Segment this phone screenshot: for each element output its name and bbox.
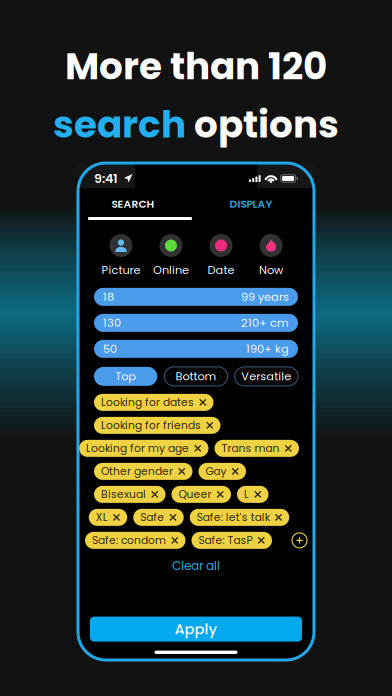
staticText: Safe: let's talk [197,510,270,525]
staticText: Safe: TasP [198,533,252,548]
button[interactable]: 130 [94,314,298,332]
staticText: Apply [174,619,217,639]
staticText: Clear all [172,557,220,574]
button[interactable]: L [237,486,268,503]
button[interactable]: DISPLAY [188,196,314,212]
button[interactable]: Safe: let's talk [190,509,289,526]
staticText: search [53,98,186,151]
button[interactable]: Add filter [292,533,307,548]
button[interactable]: Apply [90,617,302,642]
staticText: options [186,98,339,151]
staticText: Gay [205,464,226,479]
staticText: 210+ cm [241,315,289,331]
staticText: L [244,487,249,502]
staticText: 18 [103,289,114,305]
button[interactable]: Top [94,367,157,386]
staticText: Versatile [241,368,291,384]
staticText: Other gender [101,464,173,479]
staticText: Trans man [221,441,279,456]
staticText: 50 [103,341,117,357]
button[interactable]: Looking for dates [94,394,213,411]
button[interactable]: Versatile [235,367,298,386]
button[interactable]: Looking for my age [79,440,208,457]
button[interactable]: 50 [94,340,298,358]
button[interactable]: Gay [198,463,246,480]
staticText: Date [207,262,234,278]
button[interactable]: Queer [171,486,231,503]
staticText: Picture [101,262,140,278]
staticText: Safe [140,510,164,525]
staticText: More than 120 [65,40,327,92]
button[interactable]: Bottom [164,367,228,386]
staticText: XL [96,510,108,525]
staticText: 99 years [241,289,289,305]
button[interactable]: Looking for friends [94,417,220,434]
staticText: SEARCH [111,196,154,211]
button[interactable]: Trans man [214,440,299,457]
staticText: 190+ kg [246,341,289,357]
button[interactable]: Clear all [161,559,231,573]
staticText: 130 [103,315,121,331]
button[interactable]: Safe: TasP [191,532,272,549]
button[interactable]: Safe: condom [85,532,185,549]
button[interactable]: Now [246,234,296,278]
button[interactable]: SEARCH [78,196,188,212]
staticText: Bottom [175,368,216,384]
staticText: 9:41 [94,170,118,187]
staticText: Looking for dates [101,395,194,410]
button[interactable]: Picture [96,234,146,278]
staticText: DISPLAY [229,196,272,211]
button[interactable]: Date [196,234,246,278]
button[interactable]: XL [89,509,127,526]
staticText: Queer [178,487,211,502]
staticText: Looking for my age [86,441,189,456]
staticText: Top [115,368,136,384]
button[interactable]: Other gender [94,463,192,480]
button[interactable]: Online [146,234,196,278]
staticText: Looking for friends [101,418,201,433]
staticText: Bisexual [101,487,146,502]
button[interactable]: 18 [94,288,298,306]
staticText: Now [259,262,283,278]
button[interactable]: Bisexual [94,486,165,503]
button[interactable]: Safe [133,509,184,526]
staticText: Online [153,262,189,278]
staticText: Safe: condom [92,533,166,548]
